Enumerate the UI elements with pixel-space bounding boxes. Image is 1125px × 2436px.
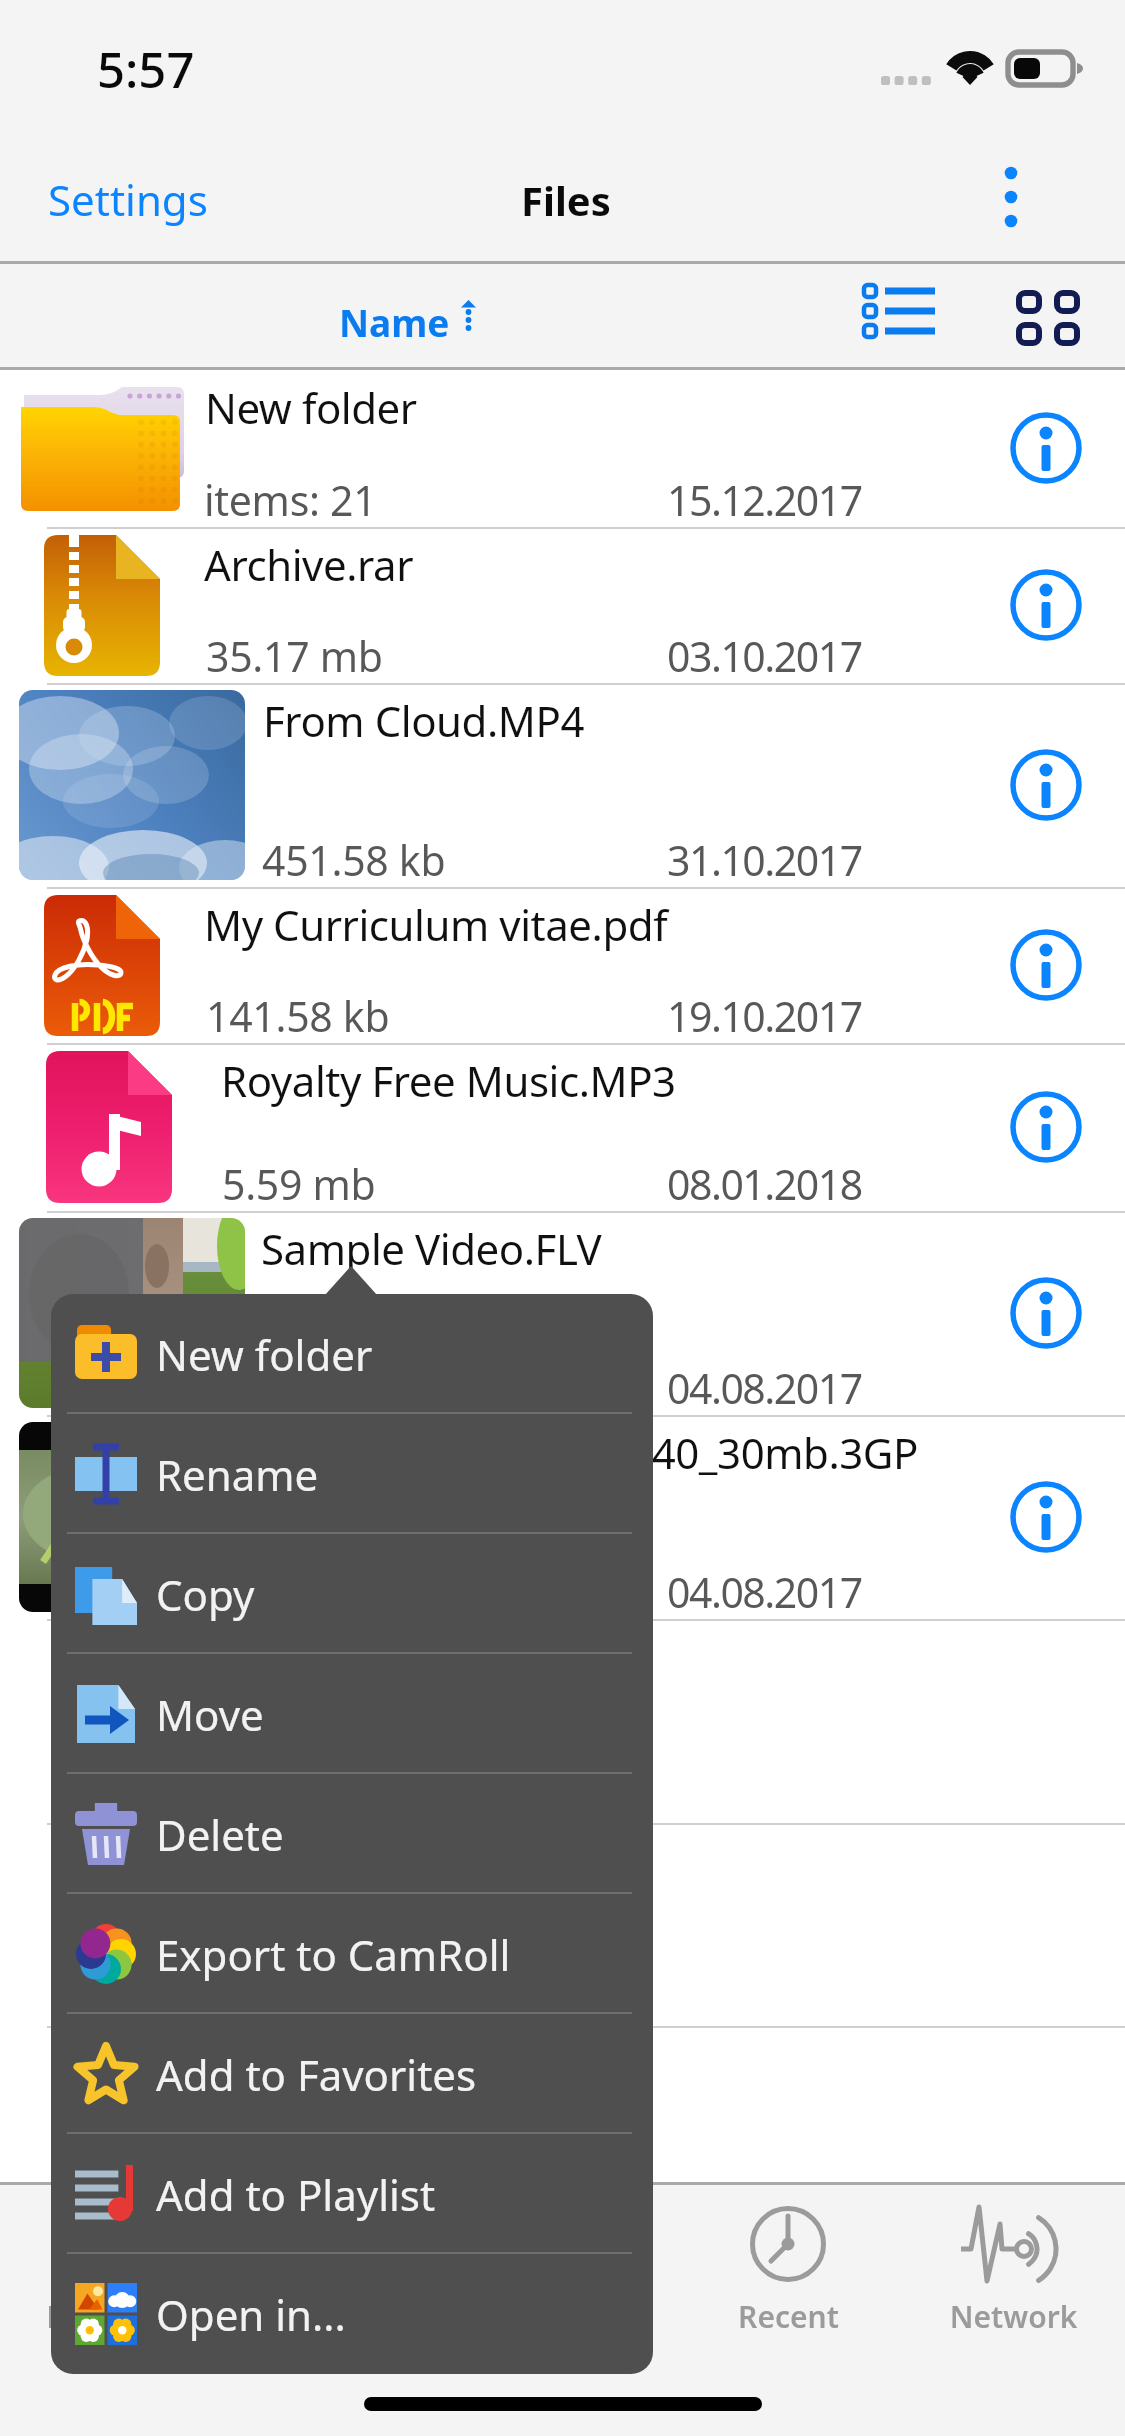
button[interactable]	[0, 2026, 1125, 2182]
staticText: 5:57	[97, 36, 195, 103]
button[interactable]: Info	[1001, 1472, 1091, 1562]
button[interactable]: Playlists	[451, 2182, 676, 2372]
button[interactable]: Sample Video.FLV	[0, 1211, 1125, 1415]
staticText: Sample Video.FLV	[261, 1220, 602, 1277]
staticText: 04.08.2017	[667, 1360, 862, 1416]
button[interactable]: Name	[320, 264, 500, 370]
staticText: Delete	[156, 1806, 284, 1863]
button[interactable]: Archive.rar	[0, 527, 1125, 683]
staticText: 3.22 mb	[262, 1360, 416, 1416]
staticText: My Curriculum vitae.pdf	[204, 896, 668, 953]
button[interactable]: Open in...	[51, 2254, 653, 2374]
button[interactable]: Copy	[51, 1534, 653, 1654]
staticText: 15.12.2017	[667, 472, 862, 528]
staticText: New folder	[205, 379, 417, 436]
staticText: 19.10.2017	[667, 988, 862, 1044]
button[interactable]: Network	[901, 2182, 1125, 2372]
staticText: 04.08.2017	[667, 1564, 862, 1620]
button[interactable]: More options	[955, 132, 1070, 264]
button[interactable]: Info	[1001, 740, 1091, 830]
button[interactable]: Move	[51, 1654, 653, 1774]
staticText: Open in...	[156, 2286, 346, 2343]
staticText: 03.10.2017	[667, 628, 862, 684]
staticText: 141.58 kb	[206, 988, 390, 1044]
button[interactable]: Export to CamRoll	[51, 1894, 653, 2014]
staticText: Favorites	[1, 2296, 226, 2337]
staticText: Recent	[676, 2296, 901, 2337]
staticText: Move	[156, 1686, 264, 1743]
button[interactable]: My Curriculum vitae.pdf	[0, 887, 1125, 1043]
staticText: Archive.rar	[204, 536, 414, 593]
staticText: 5.59 mb	[222, 1156, 376, 1212]
button[interactable]: Recent	[676, 2182, 901, 2372]
staticText: Network	[901, 2296, 1125, 2337]
button[interactable]: Grid view	[980, 264, 1125, 370]
button[interactable]: Sample_1280x720_40_30mb.3GP	[0, 1415, 1125, 1619]
staticText: New folder	[156, 1326, 373, 1383]
button[interactable]: List view	[820, 264, 980, 370]
button[interactable]: Add to Playlist	[51, 2134, 653, 2254]
button[interactable]: Rename	[51, 1414, 653, 1534]
button[interactable]: Delete	[51, 1774, 653, 1894]
button[interactable]: Add to Favorites	[51, 2014, 653, 2134]
staticText: 451.58 kb	[262, 832, 446, 888]
button[interactable]: Info	[1001, 920, 1091, 1010]
button[interactable]: Info	[1001, 1082, 1091, 1172]
staticText: Royalty Free Music.MP3	[221, 1052, 676, 1109]
staticText: Rename	[156, 1446, 319, 1503]
button[interactable]: Info	[1001, 403, 1091, 493]
staticText: Downloads	[226, 2296, 451, 2337]
button[interactable]: Royalty Free Music.MP3	[0, 1043, 1125, 1211]
button[interactable]: Settings	[30, 132, 225, 264]
button[interactable]	[0, 1823, 1125, 2026]
button[interactable]: New folder	[0, 370, 1125, 527]
staticText: Add to Favorites	[156, 2046, 477, 2103]
button[interactable]: New folder	[51, 1294, 653, 1414]
staticText: Name	[339, 297, 450, 347]
button[interactable]: From Cloud.MP4	[0, 683, 1125, 887]
button[interactable]: Info	[1001, 1268, 1091, 1358]
staticText: items: 21	[204, 472, 377, 528]
button[interactable]: Favorites	[1, 2182, 226, 2372]
staticText: 08.01.2018	[667, 1156, 862, 1212]
staticText: From Cloud.MP4	[263, 692, 584, 749]
staticText: 35.17 mb	[206, 628, 383, 684]
staticText: Files	[521, 173, 611, 227]
staticText: Playlists	[451, 2296, 676, 2337]
staticText: Export to CamRoll	[156, 1926, 511, 1983]
staticText: Copy	[156, 1566, 255, 1623]
button[interactable]	[0, 1619, 1125, 1823]
staticText: Sample_1280x720_40_30mb.3GP	[285, 1424, 918, 1481]
button[interactable]: Info	[1001, 560, 1091, 650]
staticText: Settings	[48, 171, 208, 228]
staticText: Add to Playlist	[156, 2166, 436, 2223]
button[interactable]: Downloads	[226, 2182, 451, 2372]
staticText: 31.10.2017	[667, 832, 862, 888]
